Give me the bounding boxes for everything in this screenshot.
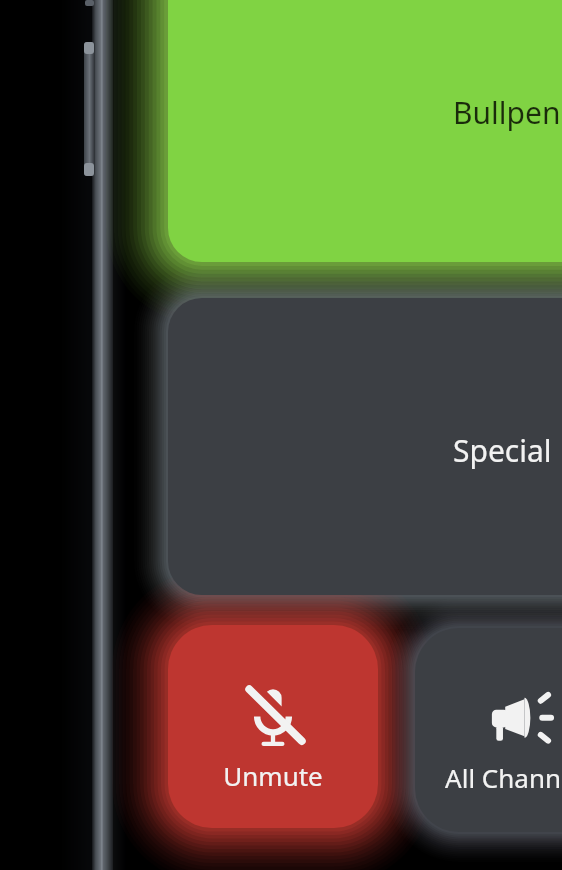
button[interactable]: Unmute <box>168 625 378 828</box>
staticText: Unmute <box>223 758 323 793</box>
staticText: Bullpen <box>453 92 561 133</box>
staticText: All Channels <box>445 760 562 795</box>
other: Unmute <box>237 682 309 754</box>
button[interactable]: All Channels <box>415 628 562 832</box>
button[interactable]: Special <box>168 298 562 595</box>
other: All Channels <box>483 683 557 757</box>
button[interactable]: Bullpen <box>168 0 562 262</box>
staticText: Special <box>453 430 552 471</box>
